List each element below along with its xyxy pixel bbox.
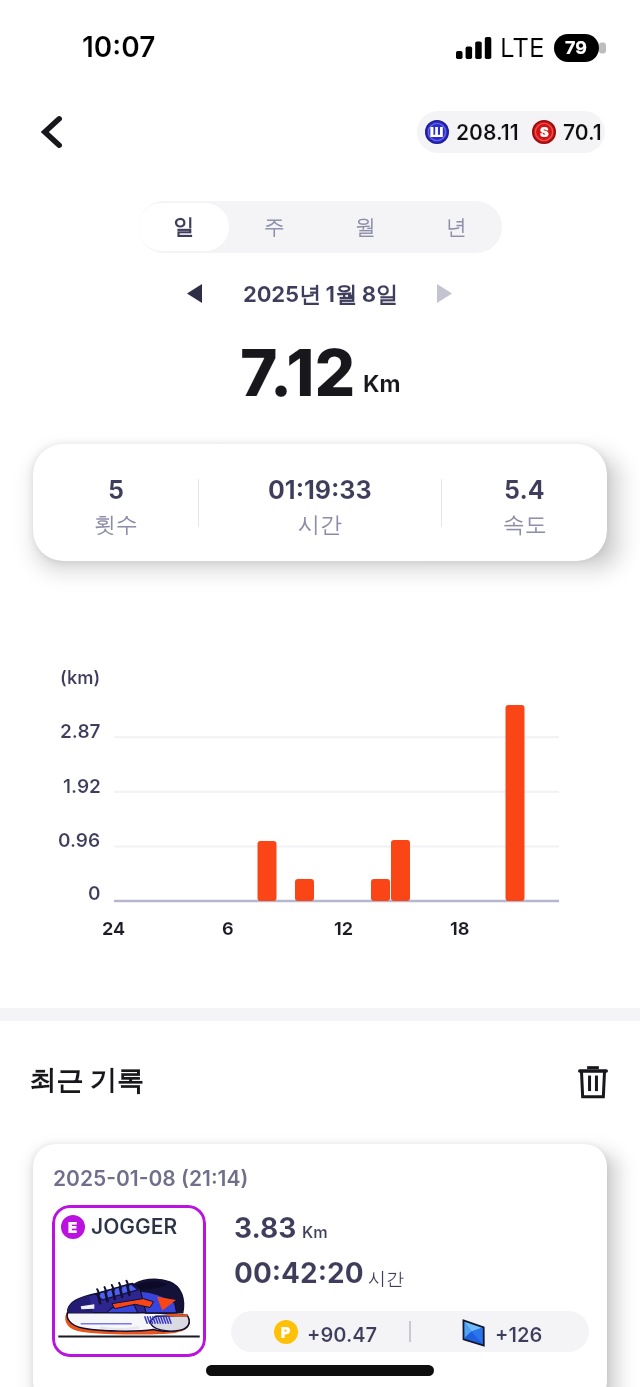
button[interactable]: 월: [320, 203, 411, 251]
staticText: 208.11: [456, 120, 519, 145]
staticText: JOGGER: [91, 1214, 178, 1239]
staticText: E: [68, 1218, 78, 1236]
staticText: LTE: [500, 32, 545, 63]
staticText: 일: [173, 214, 194, 240]
button[interactable]: Back: [26, 106, 78, 158]
staticText: Km: [363, 370, 401, 398]
staticText: 79: [565, 37, 587, 59]
button[interactable]: Previous day: [172, 271, 216, 315]
staticText: 00:42:20: [234, 1256, 364, 1290]
staticText: 18: [450, 918, 470, 940]
staticText: P: [281, 1324, 291, 1341]
button[interactable]: 년: [411, 203, 502, 251]
staticText: 속도: [503, 511, 547, 539]
staticText: 월: [355, 214, 376, 240]
button[interactable]: 일: [138, 203, 229, 251]
staticText: 년: [446, 214, 467, 240]
button[interactable]: Delete: [565, 1053, 621, 1109]
staticText: 12: [334, 918, 354, 940]
button[interactable]: 주: [229, 203, 320, 251]
staticText: 2.87: [60, 720, 101, 743]
staticText: 5: [108, 475, 124, 505]
staticText: 시간: [368, 1268, 404, 1291]
staticText: 주: [264, 214, 285, 240]
staticText: 24: [102, 918, 126, 940]
button[interactable]: 2025-01-08 (21:14): [33, 1144, 607, 1387]
staticText: 시간: [298, 511, 342, 539]
staticText: 0.96: [58, 829, 101, 852]
button[interactable]: Next day: [422, 271, 466, 315]
staticText: S: [540, 124, 549, 140]
staticText: 1.92: [63, 775, 101, 798]
staticText: (km): [60, 667, 101, 689]
staticText: Ш: [430, 124, 444, 140]
staticText: 70.1: [563, 120, 602, 145]
staticText: 6: [222, 918, 234, 940]
staticText: 01:19:33: [268, 475, 372, 505]
button[interactable]: Ш: [417, 111, 605, 153]
staticText: 10:07: [82, 30, 156, 64]
staticText: 2025년 1월 8일: [243, 281, 398, 309]
staticText: 3.83: [234, 1211, 297, 1245]
staticText: 최근 기록: [29, 1064, 144, 1098]
staticText: Km: [302, 1222, 328, 1241]
staticText: 5.4: [504, 475, 545, 505]
staticText: +126: [495, 1323, 543, 1347]
staticText: 횟수: [94, 511, 138, 539]
staticText: +90.47: [307, 1323, 378, 1347]
staticText: 0: [88, 882, 101, 905]
staticText: 7.12: [240, 334, 356, 410]
staticText: 2025-01-08 (21:14): [53, 1166, 249, 1191]
